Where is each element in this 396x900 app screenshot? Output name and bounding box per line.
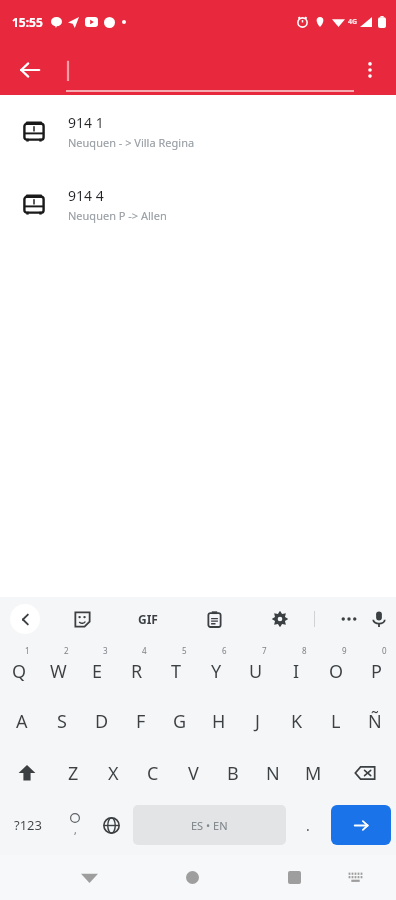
button[interactable]: Clipboard [198, 603, 230, 635]
staticText: Neuquen P -> Allen [68, 208, 167, 223]
staticText: 1 [25, 645, 30, 656]
button[interactable]: K [277, 695, 316, 747]
button[interactable]: C [133, 747, 173, 799]
button[interactable]: V [173, 747, 213, 799]
staticText: 6 [222, 645, 227, 656]
button[interactable]: U [236, 641, 276, 695]
button[interactable]: B [213, 747, 253, 799]
staticText: W [50, 659, 67, 684]
button[interactable]: Voice input [365, 603, 392, 635]
button[interactable]: J [238, 695, 277, 747]
staticText: 7 [262, 645, 267, 656]
button[interactable]: Back [10, 604, 40, 634]
staticText: E [92, 659, 103, 684]
staticText: Neuquen - > Villa Regina [68, 135, 195, 150]
staticText: J [255, 709, 260, 734]
staticText: 15:55 [12, 14, 43, 30]
button[interactable]: Y [196, 641, 236, 695]
staticText: Z [68, 761, 79, 786]
button[interactable]: O [316, 641, 356, 695]
staticText: A [16, 709, 28, 734]
button[interactable]: S [42, 695, 82, 747]
staticText: U [249, 659, 263, 684]
button[interactable]: Change language [93, 799, 130, 851]
button[interactable]: L [316, 695, 355, 747]
staticText: ES • EN [191, 818, 228, 833]
staticText: . [306, 816, 310, 835]
button[interactable]: X [93, 747, 133, 799]
button[interactable]: Shift [0, 747, 54, 799]
staticText: K [291, 709, 303, 734]
staticText: G [173, 709, 187, 734]
button[interactable]: . [289, 799, 326, 851]
staticText: 2 [64, 645, 69, 656]
staticText: 914 4 [68, 186, 104, 205]
staticText: Y [211, 659, 222, 684]
staticText: 5 [182, 645, 187, 656]
staticText: GIF [138, 611, 158, 627]
button[interactable]: Enter [331, 805, 391, 845]
staticText: H [212, 709, 226, 734]
button[interactable]: 914 4 [0, 180, 396, 228]
staticText: Q [12, 659, 27, 684]
button[interactable]: GIF [132, 603, 164, 635]
button[interactable]: Recent apps [269, 855, 320, 900]
staticText: 8 [302, 645, 307, 656]
button[interactable]: Backspace [333, 747, 396, 799]
button[interactable]: Settings [264, 603, 296, 635]
button[interactable]: A [2, 695, 42, 747]
staticText: X [108, 761, 119, 786]
button[interactable]: W [39, 641, 78, 695]
button[interactable]: ?123 [0, 799, 56, 851]
button[interactable]: Home [167, 855, 218, 900]
button[interactable]: H [199, 695, 238, 747]
button[interactable]: Back [63, 855, 115, 900]
button[interactable]: G [160, 695, 199, 747]
button[interactable]: E [78, 641, 117, 695]
button[interactable]: Z [54, 747, 93, 799]
button[interactable]: I [276, 641, 316, 695]
button[interactable]: N [253, 747, 293, 799]
staticText: V [188, 761, 199, 786]
button[interactable]: Ñ [355, 695, 394, 747]
staticText: 914 1 [68, 113, 104, 132]
staticText: S [57, 709, 67, 734]
button[interactable]: More [333, 603, 365, 635]
staticText: N [266, 761, 280, 786]
staticText: D [95, 709, 109, 734]
staticText: O [329, 659, 344, 684]
staticText: , [74, 823, 77, 837]
button[interactable]: R [117, 641, 156, 695]
staticText: B [227, 761, 239, 786]
button[interactable]: Q [0, 641, 39, 695]
staticText: Ñ [368, 709, 382, 734]
staticText: 4 [142, 645, 147, 656]
button[interactable]: Back [6, 46, 54, 94]
staticText: 9 [342, 645, 347, 656]
button[interactable]: T [156, 641, 196, 695]
button[interactable]: 914 1 [0, 107, 396, 155]
staticText: 0 [382, 645, 387, 656]
staticText: 4G [348, 17, 358, 27]
staticText: P [371, 659, 382, 684]
button[interactable]: D [82, 695, 121, 747]
staticText: ?123 [14, 816, 42, 834]
staticText: C [147, 761, 159, 786]
staticText: F [136, 709, 146, 734]
button[interactable]: P [356, 641, 396, 695]
button[interactable]: More options [348, 48, 392, 92]
button[interactable] [66, 47, 354, 93]
button[interactable]: Emoji [56, 799, 93, 851]
button[interactable]: ES • EN [133, 805, 286, 845]
staticText: M [305, 761, 322, 786]
staticText: R [131, 659, 143, 684]
staticText: I [293, 659, 300, 684]
button[interactable]: Stickers [66, 603, 98, 635]
staticText: L [331, 709, 341, 734]
staticText: T [171, 659, 182, 684]
button[interactable]: M [293, 747, 333, 799]
button[interactable]: F [121, 695, 160, 747]
staticText: 3 [103, 645, 108, 656]
button[interactable]: Keyboard switcher [330, 855, 381, 900]
